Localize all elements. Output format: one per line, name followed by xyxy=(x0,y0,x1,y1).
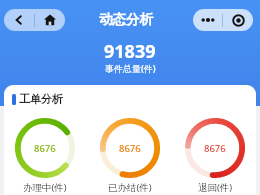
staticText: 8676 xyxy=(119,142,141,155)
button[interactable] xyxy=(193,9,222,31)
staticText: 办理中(件) xyxy=(23,181,67,194)
button[interactable] xyxy=(4,9,34,31)
staticText: 8676 xyxy=(34,142,56,155)
staticText: 已办结(件) xyxy=(108,181,152,194)
button[interactable] xyxy=(4,9,65,31)
staticText: 动态分析 xyxy=(99,11,153,28)
staticText: 8676 xyxy=(204,142,226,155)
button[interactable] xyxy=(223,9,253,31)
button[interactable] xyxy=(35,9,65,31)
button[interactable] xyxy=(193,9,253,31)
staticText: 退回(件) xyxy=(198,181,233,194)
staticText: 91839 xyxy=(104,39,156,64)
staticText: 工单分析 xyxy=(19,92,63,106)
staticText: 事件总量(件) xyxy=(105,62,156,74)
